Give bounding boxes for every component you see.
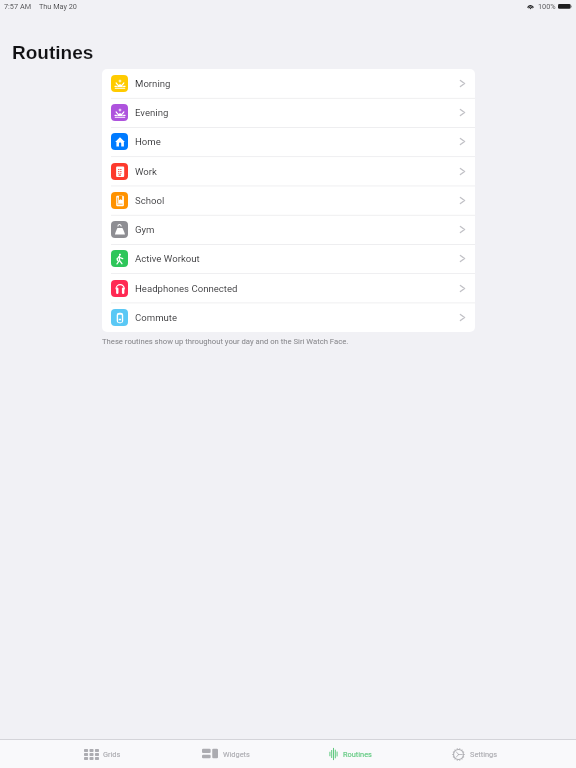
button[interactable]: Morning [102,69,475,98]
staticText: Grids [103,750,121,759]
staticText: Thu May 20 [39,2,77,11]
button[interactable]: Grids [40,740,164,768]
staticText: Commute [135,312,178,323]
staticText: Morning [135,78,171,89]
staticText: 7:57 AM [4,2,32,11]
button[interactable]: Widgets [164,740,288,768]
button[interactable]: Work [102,157,475,186]
button[interactable]: Active Workout [102,244,475,273]
staticText: Active Workout [135,253,200,264]
staticText: Work [135,166,157,177]
staticText: These routines show up throughout your d… [102,337,349,346]
staticText: Routines [12,42,94,63]
button[interactable]: Commute [102,303,475,332]
staticText: Gym [135,224,155,235]
staticText: Home [135,136,161,147]
staticText: Routines [343,750,372,759]
staticText: School [135,195,165,206]
staticText: Headphones Connected [135,283,238,294]
staticText: Evening [135,107,169,118]
staticText: Widgets [223,750,250,759]
button[interactable]: Headphones Connected [102,274,475,303]
button[interactable]: Routines [288,740,412,768]
staticText: 100% [538,2,556,11]
button[interactable]: Gym [102,215,475,244]
button[interactable]: Home [102,127,475,156]
staticText: Settings [470,750,497,759]
button[interactable]: School [102,186,475,215]
button[interactable]: Settings [412,740,536,768]
button[interactable]: Evening [102,98,475,127]
